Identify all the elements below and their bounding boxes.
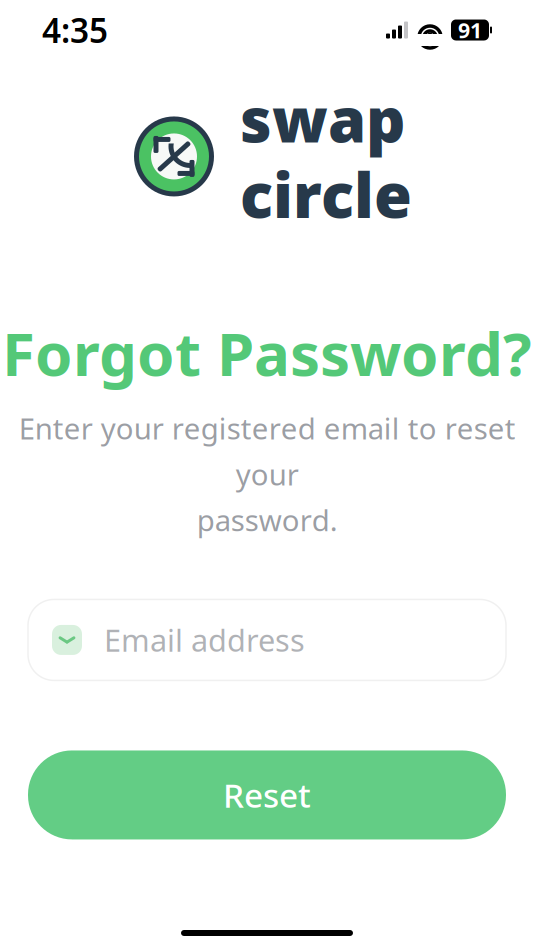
button[interactable]: Email address	[28, 599, 506, 680]
staticText: 91	[458, 16, 482, 44]
staticText: Email address	[104, 620, 305, 660]
staticText: circle	[240, 153, 412, 235]
staticText: 4:35	[42, 8, 108, 52]
staticText: Forgot Password?	[2, 313, 532, 393]
button[interactable]: Reset	[28, 750, 506, 839]
staticText: swap	[240, 78, 405, 159]
staticText: Enter your registered email to reset you…	[18, 409, 515, 539]
staticText: Reset	[223, 773, 311, 817]
